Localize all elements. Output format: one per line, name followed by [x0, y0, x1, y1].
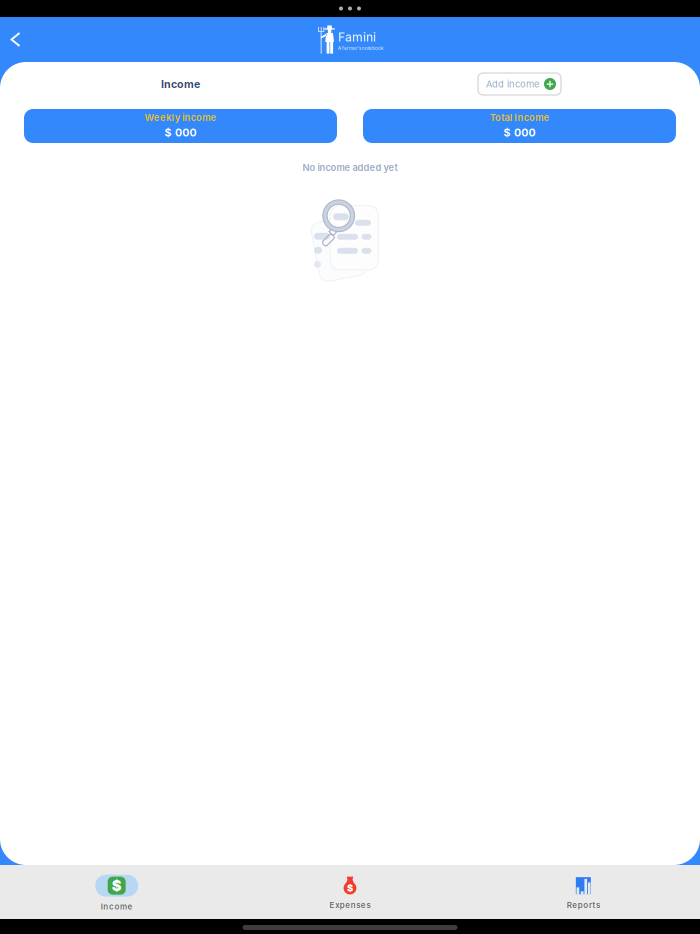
staticText: Expenses [330, 900, 370, 910]
staticText: Weekly income [144, 112, 216, 123]
staticText: Add income [486, 78, 539, 90]
button[interactable]: Back [0, 21, 31, 57]
button[interactable]: Reports [467, 865, 700, 919]
staticText: Famini [338, 30, 376, 44]
staticText: $ 000 [503, 126, 536, 139]
staticText: $ [347, 882, 353, 894]
button[interactable]: $ [233, 865, 467, 919]
staticText: A farmer's notebook [338, 45, 383, 51]
button[interactable]: $ [0, 865, 233, 919]
staticText: $ 000 [164, 126, 197, 139]
button[interactable]: Add income [478, 73, 561, 95]
staticText: No income added yet [302, 162, 397, 173]
staticText: Reports [567, 900, 600, 910]
staticText: Income [161, 77, 200, 90]
staticText: Total Income [490, 112, 549, 123]
staticText: $ [112, 877, 122, 894]
staticText: Income [101, 902, 132, 911]
